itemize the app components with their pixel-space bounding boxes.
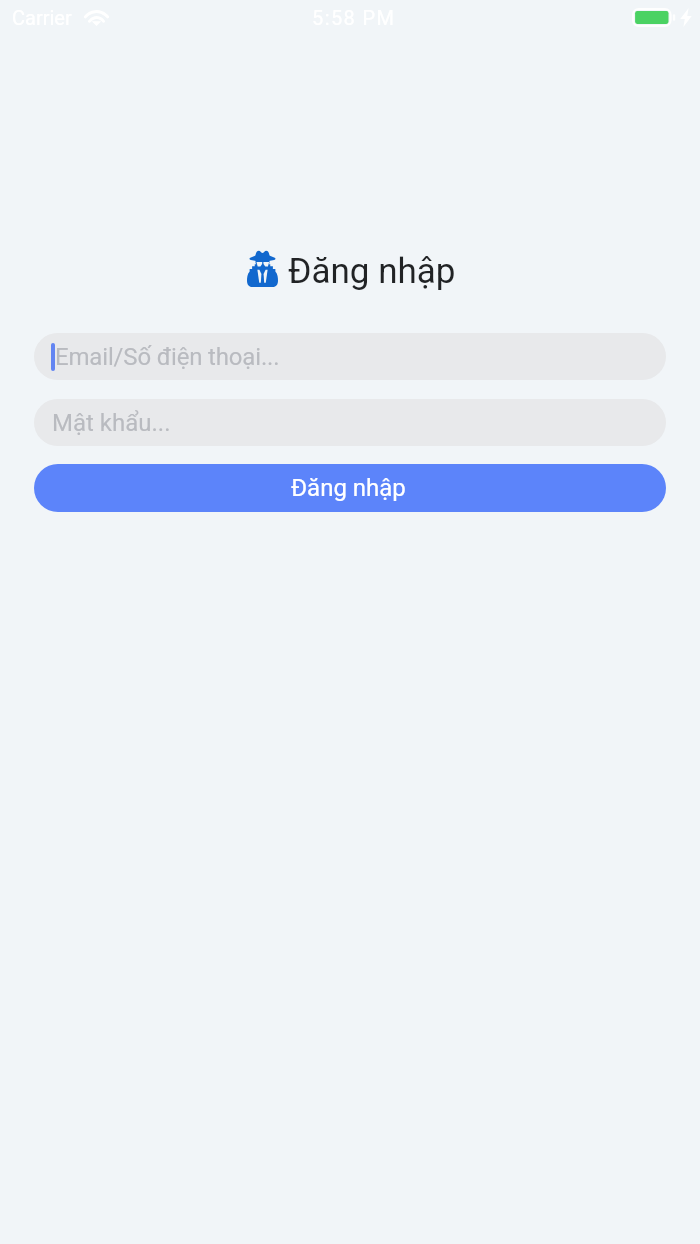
other: Battery charging [632, 8, 676, 27]
button[interactable]: Email/Số điện thoại... [34, 333, 666, 380]
staticText: Carrier [12, 6, 72, 29]
other: Anonymous login [247, 249, 278, 287]
staticText: Đăng nhập [288, 251, 456, 292]
staticText: Đăng nhập [291, 474, 406, 502]
button[interactable]: Đăng nhập [34, 464, 666, 512]
staticText: Mật khẩu... [52, 409, 171, 437]
staticText: 5:58 PM [312, 6, 396, 29]
other: Charging [680, 8, 692, 27]
staticText: Email/Số điện thoại... [55, 343, 280, 371]
button[interactable]: Mật khẩu... [34, 399, 666, 446]
other: Wi-Fi signal [84, 8, 109, 26]
